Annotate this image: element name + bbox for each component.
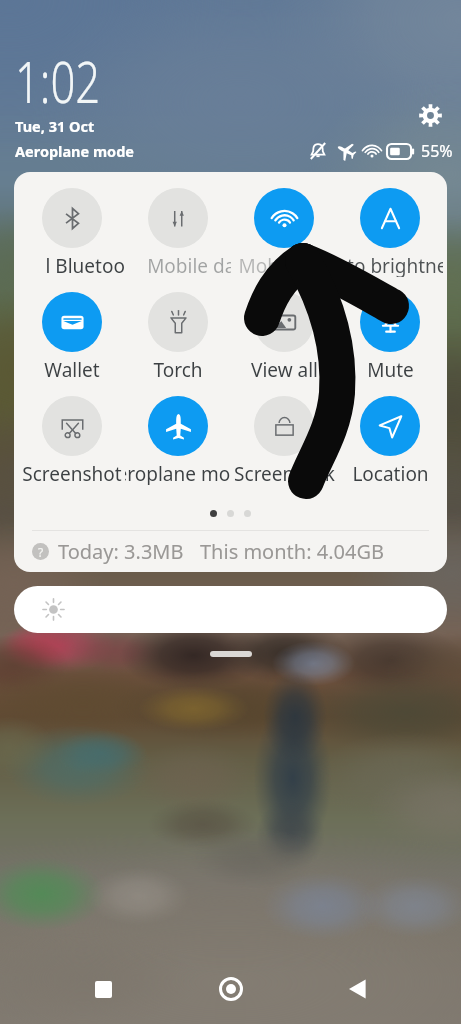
button[interactable]: Mobile hotspot	[231, 184, 337, 288]
staticText: Today: 3.3MB	[58, 538, 184, 565]
staticText: View all	[251, 357, 318, 381]
button[interactable]: Screen lock	[231, 392, 337, 496]
staticText: Auto brightness	[337, 253, 443, 277]
button[interactable]: Location	[337, 392, 443, 496]
staticText: Screenshot	[22, 461, 122, 485]
staticText: Mobile hotspot	[238, 253, 337, 277]
staticText: This month: 4.04GB	[200, 538, 384, 565]
button[interactable]: l Bluetooth	[19, 184, 125, 288]
staticText: 55%	[421, 140, 453, 162]
staticText: Torch	[153, 357, 203, 381]
button[interactable]: Mute	[337, 288, 443, 392]
button[interactable]: Mobile data	[125, 184, 231, 288]
staticText: Aeroplane mode	[15, 141, 134, 161]
staticText: Location	[352, 461, 429, 485]
staticText: ?	[38, 544, 44, 560]
staticText: Tue, 31 Oct	[15, 116, 95, 136]
staticText: Aeroplane mode	[125, 461, 231, 485]
staticText: Screen lock	[234, 461, 335, 485]
button[interactable]: Back	[334, 965, 382, 1013]
staticText: Mute	[367, 357, 414, 381]
button[interactable]: Brightness	[14, 586, 447, 633]
button[interactable]: View all	[231, 288, 337, 392]
button[interactable]: Screenshot	[19, 392, 125, 496]
button[interactable]: Settings	[414, 99, 446, 131]
button[interactable]: Wallet	[19, 288, 125, 392]
button[interactable]: Recents	[79, 965, 127, 1013]
button[interactable]: Aeroplane mode	[125, 392, 231, 496]
staticText: 1:02	[15, 42, 101, 120]
staticText: Wallet	[44, 357, 100, 381]
staticText: Mobile data	[147, 253, 231, 277]
button[interactable]: Torch	[125, 288, 231, 392]
button[interactable]: Auto brightness	[337, 184, 443, 288]
staticText: l Bluetooth	[45, 253, 125, 277]
button[interactable]: Home	[207, 965, 255, 1013]
